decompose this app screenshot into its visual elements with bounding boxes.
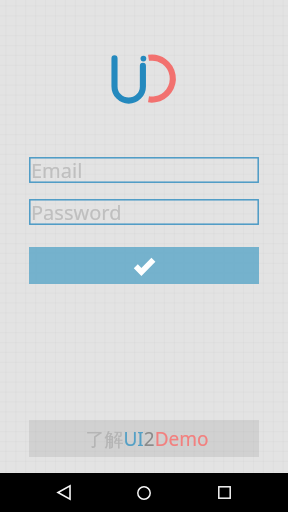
button[interactable]: 了解UI2Demo	[29, 420, 259, 457]
staticText: Email	[31, 157, 83, 183]
button[interactable]: Back	[40, 473, 88, 512]
staticText: Password	[31, 199, 122, 225]
button[interactable]: Password	[29, 199, 259, 225]
button[interactable]: Recent apps	[200, 473, 248, 512]
staticText: 了解UI2Demo	[85, 426, 209, 452]
button[interactable]: Email	[29, 157, 259, 183]
button[interactable]: Home	[120, 473, 168, 512]
button[interactable]: Sign in	[29, 247, 259, 284]
